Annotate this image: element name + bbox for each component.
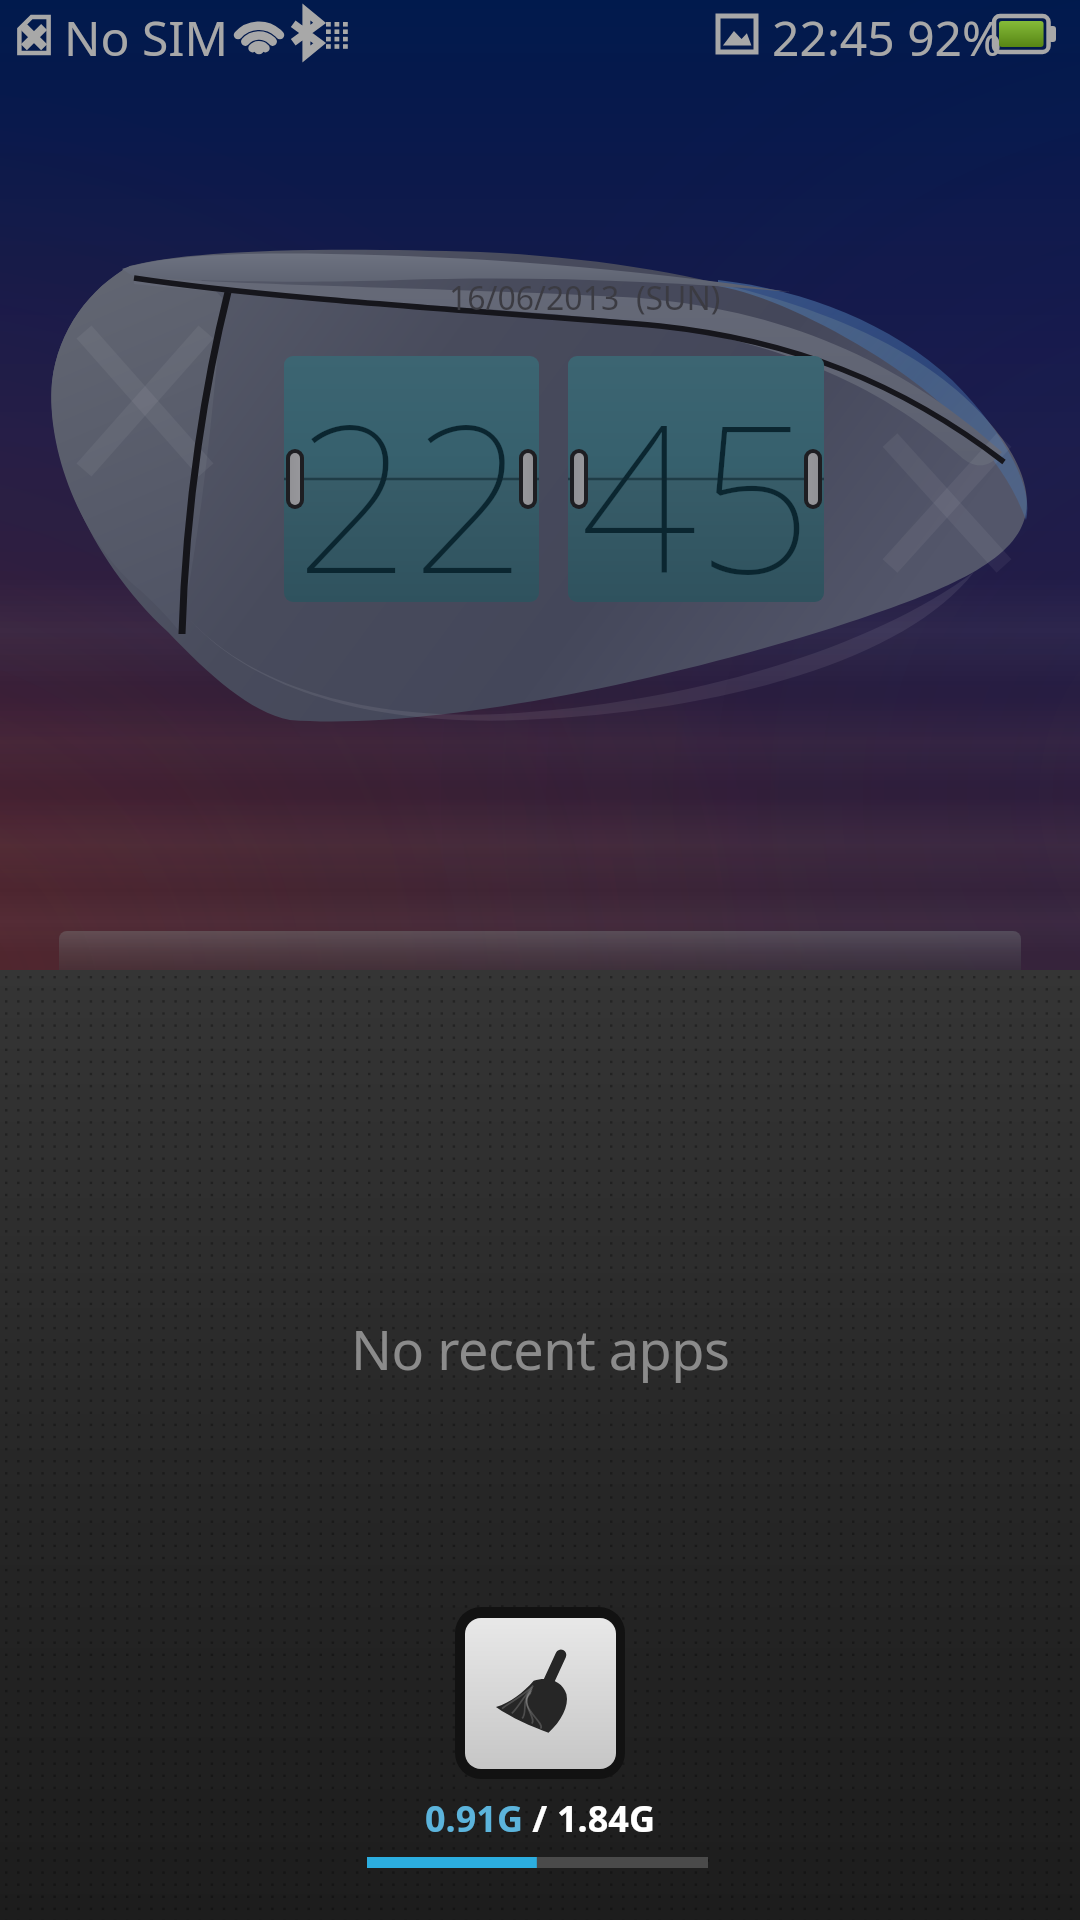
staticText: 22:45 92%: [772, 5, 1002, 67]
staticText: 1.84G: [557, 1794, 655, 1843]
staticText: 16/06/2013 (SUN): [449, 276, 721, 320]
button[interactable]: Clean memory: [455, 1607, 625, 1779]
staticText: No recent apps: [351, 1312, 730, 1386]
staticText: /: [523, 1794, 557, 1843]
staticText: 0.91G: [425, 1794, 523, 1843]
staticText: 22: [295, 356, 528, 601]
staticText: 45: [580, 356, 813, 601]
staticText: No SIM: [64, 5, 229, 67]
